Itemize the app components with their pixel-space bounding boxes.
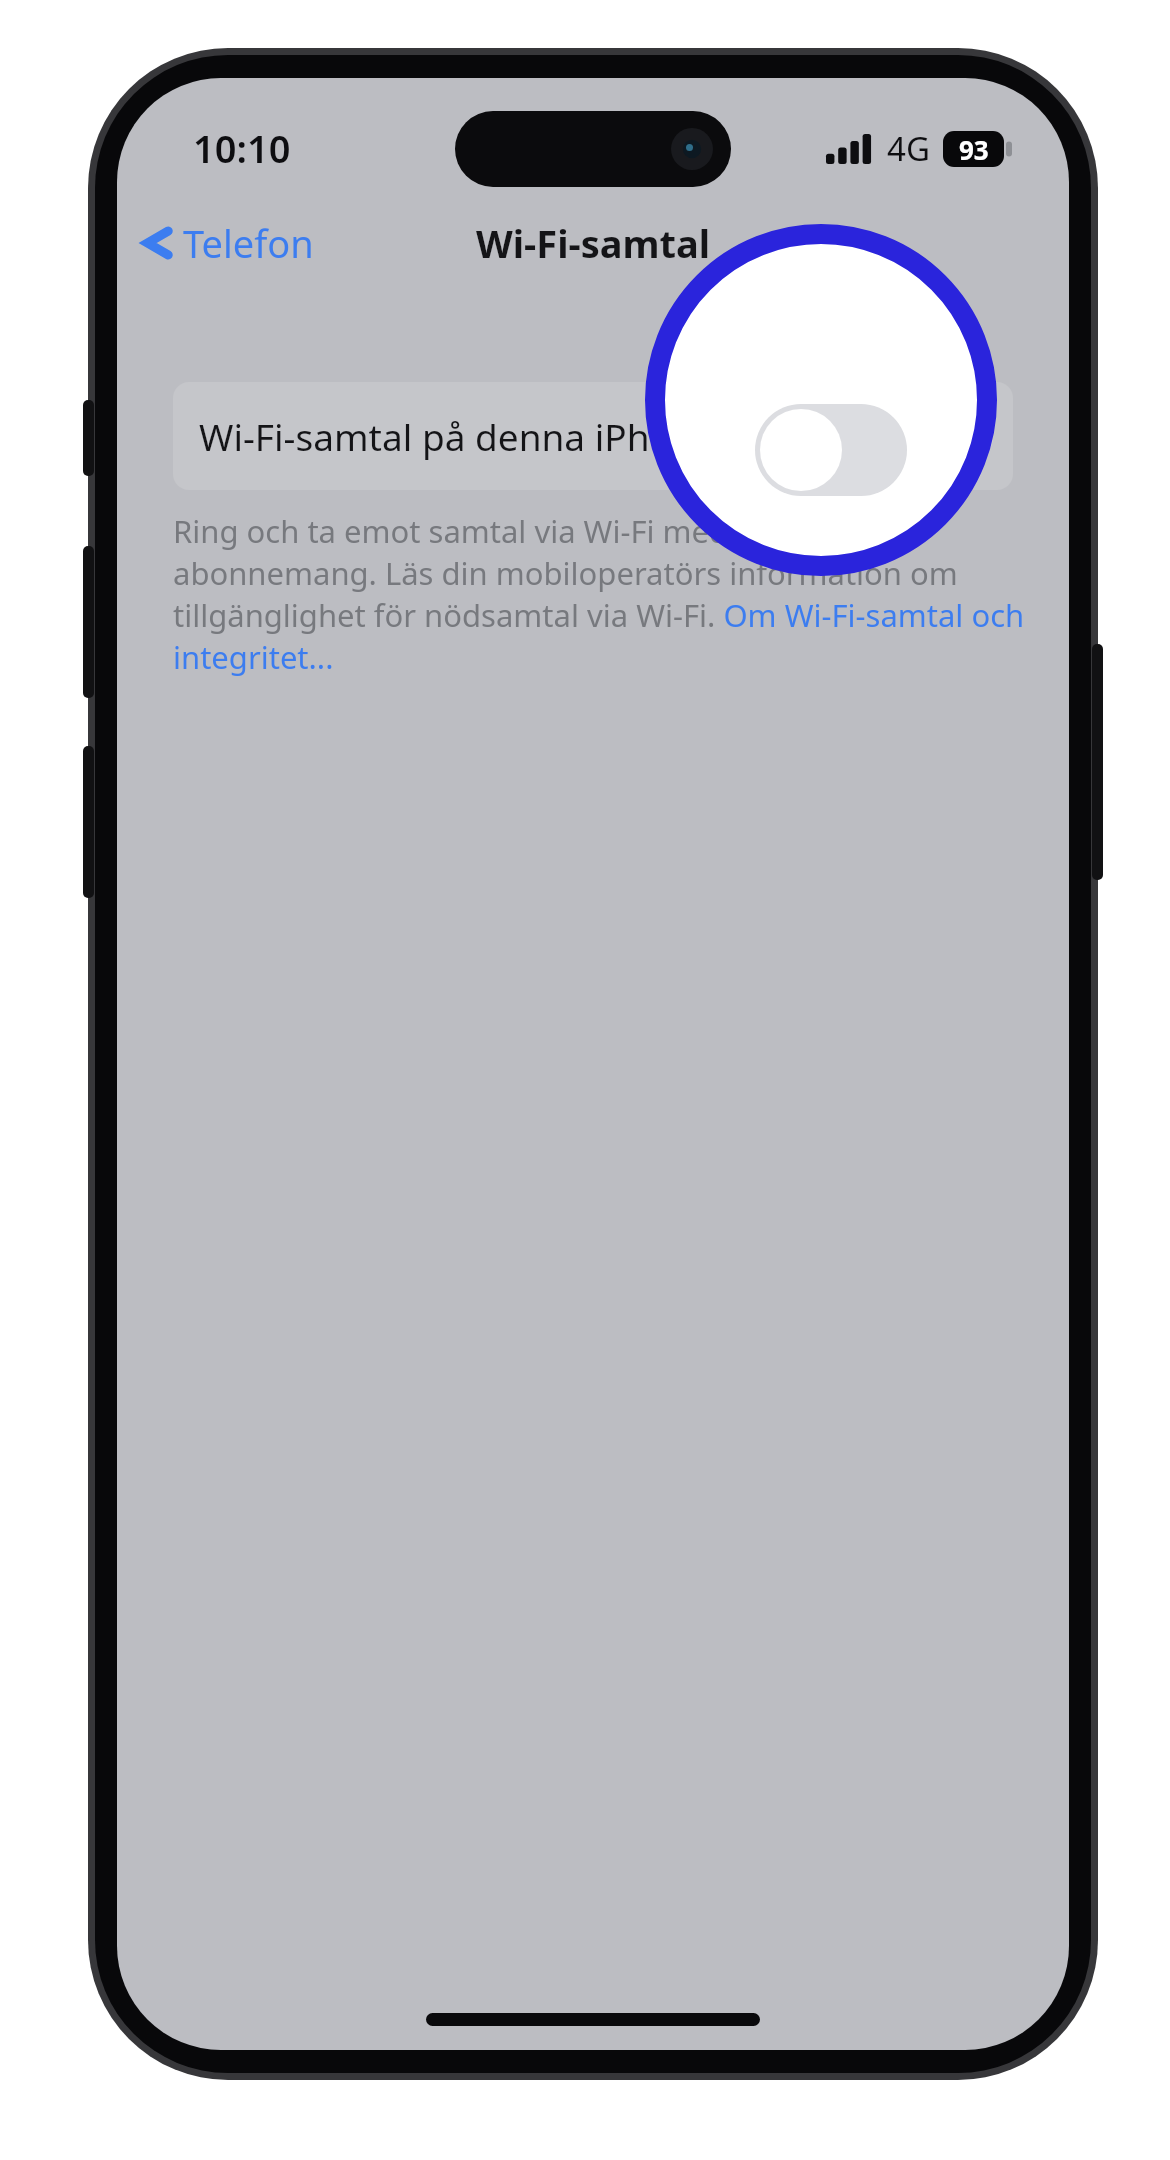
button[interactable]: Wi-Fi-samtal växla xyxy=(755,404,907,496)
staticText: Ring och ta emot samtal via Wi-Fi med di… xyxy=(173,510,1035,678)
staticText: 4G xyxy=(887,126,930,171)
button[interactable]: Wi-Fi-samtal på denna iPhone xyxy=(895,407,993,465)
staticText: 93 xyxy=(959,132,989,167)
button[interactable]: Telefon xyxy=(131,209,328,277)
staticText: Wi-Fi-samtal på denna iPhone xyxy=(199,411,716,461)
button[interactable]: Wi-Fi-samtal på denna iPhone xyxy=(173,382,1013,490)
staticText: 10:10 xyxy=(193,122,291,174)
staticText: Telefon xyxy=(183,217,314,269)
staticText: Wi-Fi-samtal xyxy=(476,217,711,269)
